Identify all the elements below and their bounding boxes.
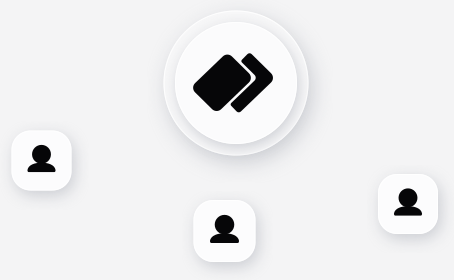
button[interactable]: Contact	[193, 200, 255, 262]
button[interactable]: Connect	[163, 10, 308, 155]
button[interactable]: Contact	[378, 174, 438, 234]
button[interactable]: Contact	[11, 130, 71, 190]
